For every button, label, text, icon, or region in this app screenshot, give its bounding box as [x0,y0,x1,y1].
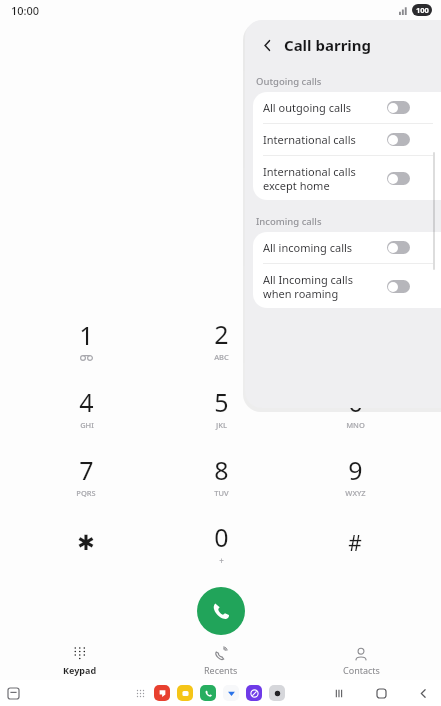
staticText: 7 [79,453,94,487]
button[interactable]: International calls except home [253,156,441,200]
button[interactable]: Recents [331,685,347,701]
button[interactable]: Phone [200,685,216,701]
staticText: Incoming calls [256,215,322,228]
staticText: 9 [348,453,363,487]
button[interactable]: Internet [246,685,262,701]
button[interactable]: 6 [306,373,404,441]
button[interactable] [387,101,410,114]
button[interactable] [387,133,410,146]
staticText: All incoming calls [263,240,383,255]
button[interactable] [387,172,410,185]
button[interactable]: 1 [37,305,135,373]
staticText: Call barring [284,35,372,55]
button[interactable]: Back [415,685,431,701]
staticText: International calls except home [263,164,383,193]
button[interactable] [387,280,410,293]
button[interactable]: Contacts [301,645,421,678]
button[interactable]: Gallery [177,685,193,701]
button[interactable]: 2 [172,305,270,373]
staticText: 4 [79,385,94,419]
button[interactable]: ✱ [37,509,135,577]
staticText: # [348,529,362,558]
button[interactable]: 5 [172,373,270,441]
staticText: 1 [79,318,94,352]
staticText: 10:00 [11,3,40,18]
button[interactable]: 7 [37,441,135,509]
button[interactable]: Back [255,33,279,57]
button[interactable]: Recent apps [4,684,22,702]
staticText: 0 [214,520,229,554]
button[interactable]: Recents [161,645,281,678]
button[interactable]: All Incoming calls when roaming [253,264,441,308]
button[interactable]: All apps [133,686,147,700]
button[interactable]: 8 [172,441,270,509]
button[interactable]: Messages [154,685,170,701]
button[interactable]: Chat [223,685,239,701]
staticText: 8 [214,453,229,487]
staticText: International calls [263,132,383,147]
staticText: All outgoing calls [263,100,383,115]
staticText: MNO [346,420,365,430]
staticText: + [219,555,224,566]
staticText: 100 [416,5,429,15]
staticText: ABC [214,352,229,362]
button[interactable]: All outgoing calls [253,92,441,123]
staticText: 2 [214,317,229,351]
staticText: PQRS [76,488,96,498]
button[interactable]: 3 [306,305,404,373]
staticText: Contacts [343,664,380,676]
staticText: Outgoing calls [256,75,322,88]
staticText: WXYZ [345,488,366,498]
staticText: TUV [214,488,229,498]
button[interactable]: # [306,509,404,577]
button[interactable]: 0 [172,509,270,577]
button[interactable]: Call [197,587,245,635]
button[interactable]: 9 [306,441,404,509]
staticText: Recents [204,664,238,676]
staticText: All Incoming calls when roaming [263,272,383,301]
staticText: JKL [216,420,227,430]
staticText: 5 [214,385,229,419]
button[interactable] [387,241,410,254]
button[interactable]: All incoming calls [253,232,441,263]
button[interactable]: 4 [37,373,135,441]
staticText: ✱ [77,531,95,555]
staticText: GHI [80,420,94,430]
staticText: Keypad [63,664,97,676]
staticText: 6 [348,385,363,419]
button[interactable]: International calls [253,124,441,155]
button[interactable]: Camera [269,685,285,701]
button[interactable]: Keypad [20,645,140,678]
button[interactable]: Home [373,685,389,701]
